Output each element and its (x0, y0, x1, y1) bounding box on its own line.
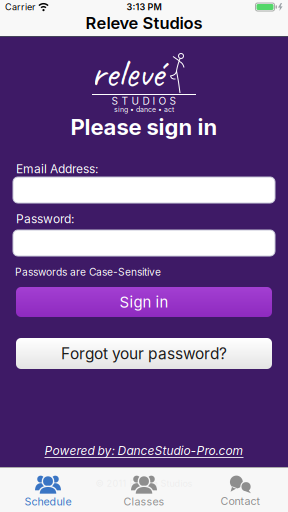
staticText: S T U D I O S (111, 95, 176, 107)
staticText: Passwords are Case-Sensitive (15, 266, 161, 278)
staticText: Classes (123, 495, 164, 508)
button[interactable]: Classes (96, 471, 192, 508)
staticText: 3:13 PM (126, 1, 161, 12)
staticText: relevé (90, 48, 163, 98)
staticText: Carrier (5, 1, 35, 12)
button[interactable]: Password (13, 230, 275, 256)
staticText: Email Address: (16, 162, 98, 176)
button[interactable]: Powered by: DanceStudio-Pro.com (44, 443, 243, 458)
staticText: © 2011 Releve Studios (95, 478, 192, 489)
button[interactable]: Schedule (0, 471, 96, 508)
staticText: Password: (16, 212, 74, 226)
staticText: Releve Studios (85, 13, 202, 33)
button[interactable]: Contact (192, 471, 288, 507)
staticText: sing • dance • act (114, 105, 174, 114)
staticText: Please sign in (70, 114, 217, 140)
button[interactable]: Email Address (13, 177, 275, 203)
button[interactable]: Forgot your password? (16, 338, 272, 369)
staticText: Contact (220, 494, 259, 507)
staticText: Forgot your password? (61, 344, 227, 363)
staticText: Schedule (24, 495, 71, 508)
button[interactable]: Sign in (16, 287, 272, 317)
staticText: Sign in (119, 293, 168, 311)
staticText: Powered by: DanceStudio-Pro.com (44, 443, 243, 458)
